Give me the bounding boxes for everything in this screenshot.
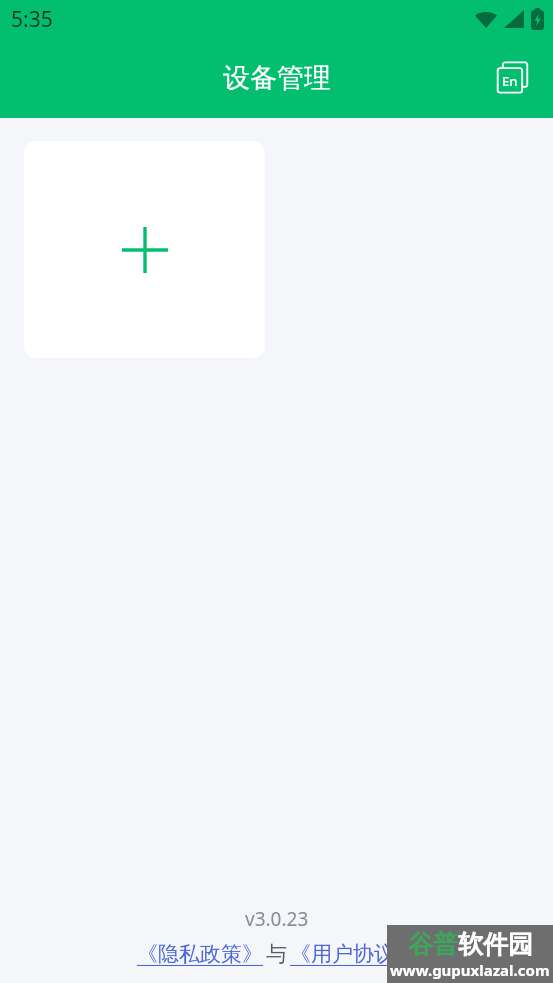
button[interactable]: 《用户协议》 (290, 941, 416, 967)
staticText: 软件园 (458, 929, 533, 960)
staticText: 与 (266, 941, 287, 967)
staticText: www.gupuxlazal.com (390, 960, 550, 980)
staticText: 谷普 (408, 929, 458, 960)
button[interactable]: Switch language to English (489, 54, 537, 102)
staticText: v3.0.23 (245, 906, 309, 932)
staticText: 设备管理 (223, 61, 331, 95)
staticText: 5:35 (11, 5, 53, 34)
button[interactable]: 《隐私政策》 (137, 941, 263, 967)
staticText: En (502, 72, 518, 90)
button[interactable]: Add device (24, 141, 265, 358)
